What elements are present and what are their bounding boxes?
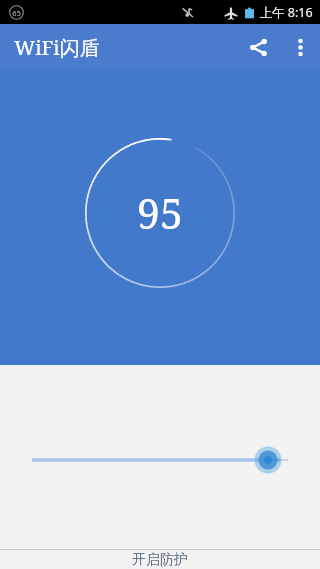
button[interactable] — [0, 442, 320, 478]
staticText: 上午 8:16 — [259, 4, 313, 21]
button[interactable]: Share — [236, 25, 280, 69]
staticText: 95 — [137, 185, 183, 241]
button[interactable]: 开启防护 — [0, 550, 320, 569]
button[interactable]: More options — [280, 27, 320, 67]
staticText: 开启防护 — [132, 551, 188, 569]
staticText: 65 — [12, 8, 21, 18]
staticText: WiFi闪盾 — [14, 34, 100, 61]
